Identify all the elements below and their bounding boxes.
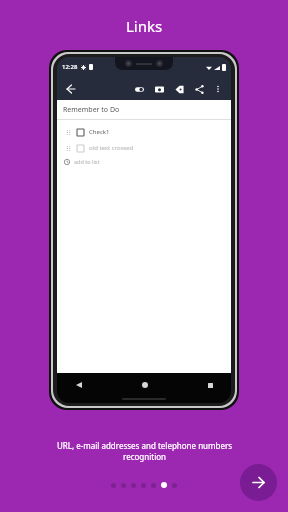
button[interactable] bbox=[111, 483, 116, 488]
staticText: URL, e-mail addresses and telephone numb… bbox=[47, 440, 242, 462]
button[interactable]: Share bbox=[191, 81, 207, 97]
button[interactable]: More options bbox=[211, 82, 225, 96]
button[interactable] bbox=[151, 483, 156, 488]
staticText: Remember to Do bbox=[63, 105, 120, 115]
button[interactable] bbox=[121, 483, 126, 488]
staticText: old text crossed bbox=[89, 144, 134, 152]
button[interactable]: Back bbox=[63, 81, 79, 97]
button[interactable]: Attach image bbox=[151, 81, 167, 97]
button[interactable]: Back bbox=[73, 379, 85, 391]
button[interactable]: Home bbox=[139, 379, 151, 391]
staticText: 12:28 bbox=[62, 63, 78, 71]
button[interactable]: Recents bbox=[204, 379, 216, 391]
button[interactable]: Labels bbox=[171, 81, 187, 97]
staticText: Check1 bbox=[89, 128, 110, 136]
button[interactable]: old text crossed bbox=[66, 144, 231, 152]
staticText: add to list bbox=[74, 158, 100, 165]
button[interactable]: Link preview bbox=[131, 81, 147, 97]
button[interactable] bbox=[141, 483, 146, 488]
button[interactable] bbox=[131, 483, 136, 488]
button[interactable] bbox=[161, 482, 167, 488]
button[interactable]: add to list bbox=[64, 158, 231, 165]
button[interactable] bbox=[172, 483, 177, 488]
button[interactable]: Check1 bbox=[66, 128, 231, 136]
button[interactable]: Next bbox=[240, 464, 277, 501]
staticText: Links bbox=[126, 16, 163, 36]
